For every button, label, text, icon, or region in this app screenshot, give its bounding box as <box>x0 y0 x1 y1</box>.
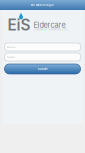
staticText: EiS <box>7 16 30 34</box>
staticText: Password <box>6 56 14 58</box>
staticText: Submit <box>37 67 47 71</box>
staticText: EIS Mobile Login <box>31 3 54 6</box>
staticText: Username <box>6 46 15 48</box>
button[interactable]: Submit <box>2 64 83 74</box>
staticText: Insurance Services, Inc. <box>33 28 68 31</box>
staticText: Eldercare <box>33 21 65 29</box>
